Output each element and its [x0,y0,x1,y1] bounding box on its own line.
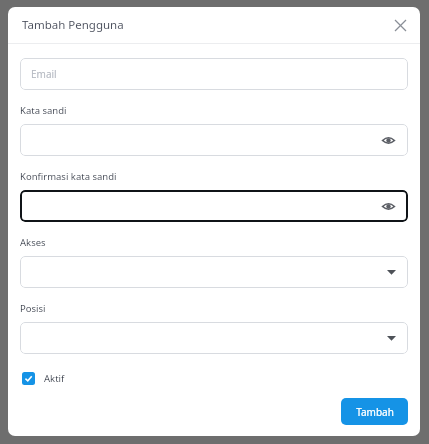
button[interactable]: Aktif [20,370,67,387]
button[interactable] [20,256,408,288]
button[interactable]: Email [20,58,408,90]
staticText: Email [31,67,57,81]
button[interactable] [20,124,408,156]
button[interactable]: Tambah [341,398,408,425]
button[interactable]: Close [389,14,411,36]
staticText: Konfirmasi kata sandi [20,170,117,183]
staticText: Aktif [44,372,65,385]
staticText: Kata sandi [20,104,67,117]
staticText: Akses [20,236,46,249]
staticText: Posisi [20,302,46,315]
button[interactable] [20,322,408,354]
staticText: Tambah Pengguna [22,17,124,33]
staticText: Tambah [356,405,394,419]
button[interactable] [20,190,408,222]
